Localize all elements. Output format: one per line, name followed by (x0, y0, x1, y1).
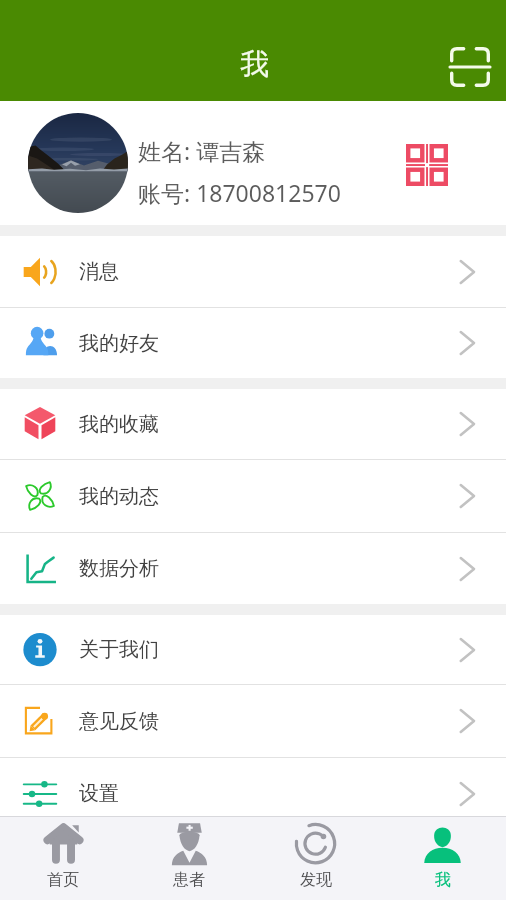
staticText: 我的收藏 (79, 412, 159, 437)
button[interactable]: 患者 (126, 815, 252, 898)
staticText: 关于我们 (79, 637, 159, 662)
staticText: 意见反馈 (79, 709, 159, 734)
button[interactable]: 数据分析 (0, 533, 506, 604)
button[interactable]: 消息 (0, 236, 506, 307)
button[interactable]: 姓名: 谭吉森 (0, 101, 506, 225)
button[interactable]: 我的收藏 (0, 389, 506, 459)
staticText: 我 (240, 46, 269, 83)
staticText: 设置 (79, 781, 119, 806)
staticText: 我 (435, 870, 451, 890)
button[interactable]: 发现 (252, 815, 379, 898)
staticText: 我的动态 (79, 484, 159, 509)
staticText: 我的好友 (79, 331, 159, 356)
staticText: 消息 (79, 259, 119, 284)
staticText: 首页 (47, 870, 79, 890)
button[interactable]: 我的好友 (0, 308, 506, 378)
button[interactable]: 我 (379, 815, 506, 898)
button[interactable]: My QR code (405, 143, 449, 187)
button[interactable]: 我的动态 (0, 460, 506, 532)
staticText: 患者 (173, 870, 205, 890)
staticText: 数据分析 (79, 556, 159, 581)
staticText: 发现 (300, 870, 332, 890)
button[interactable]: 意见反馈 (0, 685, 506, 757)
button[interactable]: 关于我们 (0, 615, 506, 684)
button[interactable]: Scan QR code (450, 47, 490, 87)
staticText: 账号: 18700812570 (138, 177, 341, 208)
button[interactable]: 设置 (0, 758, 506, 829)
button[interactable]: 首页 (0, 815, 126, 898)
staticText: 姓名: 谭吉森 (138, 135, 266, 166)
